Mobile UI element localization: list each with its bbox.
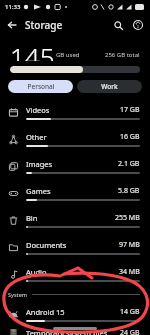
button[interactable]: Videos: [0, 99, 150, 126]
button[interactable]: Games: [0, 180, 150, 207]
staticText: Audio: [26, 267, 119, 277]
staticText: Storage: [25, 18, 63, 32]
staticText: GB used: [56, 51, 80, 59]
staticText: System: [8, 291, 28, 298]
staticText: Bin: [26, 213, 115, 223]
staticText: Games: [26, 186, 118, 196]
staticText: 34 MB: [119, 267, 140, 277]
staticText: 97 MB: [119, 240, 140, 250]
button[interactable]: Audio: [0, 261, 150, 288]
button[interactable]: Images: [0, 153, 150, 180]
button[interactable]: Back: [3, 16, 21, 34]
staticText: Videos: [26, 105, 120, 115]
staticText: Temporary system files: [26, 328, 120, 335]
staticText: 255 MB: [115, 213, 140, 223]
button[interactable]: Personal: [8, 80, 73, 93]
staticText: Images: [26, 159, 118, 169]
button[interactable]: Other: [0, 126, 150, 153]
button[interactable]: Help: [129, 16, 147, 34]
button[interactable]: Search: [109, 16, 127, 34]
button[interactable]: Work: [77, 80, 142, 93]
staticText: 14 GB: [120, 307, 140, 317]
staticText: Documents: [26, 240, 119, 250]
staticText: 5.8 GB: [118, 186, 140, 196]
staticText: 17 GB: [120, 105, 140, 115]
staticText: Other: [26, 132, 120, 142]
button[interactable]: Android 15: [0, 301, 150, 328]
button[interactable]: Documents: [0, 234, 150, 261]
staticText: 256 GB total: [105, 51, 140, 59]
staticText: Work: [101, 82, 118, 91]
button[interactable]: Temporary system files: [0, 328, 150, 335]
staticText: 24 GB: [120, 328, 140, 335]
staticText: 16 GB: [120, 132, 140, 142]
staticText: 145: [10, 39, 55, 61]
button[interactable]: Bin: [0, 207, 150, 234]
staticText: 11:33: [5, 3, 21, 11]
staticText: Android 15: [26, 307, 120, 317]
staticText: Personal: [27, 82, 55, 91]
staticText: 2.1 GB: [118, 159, 140, 169]
